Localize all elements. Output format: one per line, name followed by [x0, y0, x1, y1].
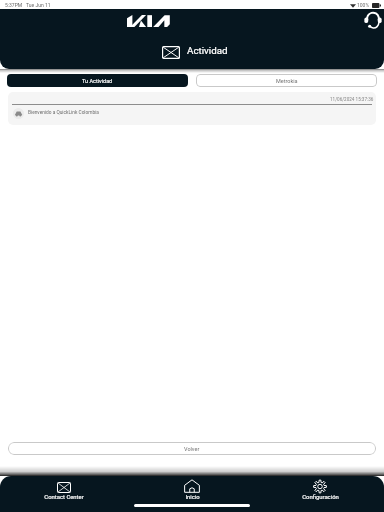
staticText: Inicio [185, 494, 200, 501]
button[interactable]: Contact Center [0, 479, 128, 501]
staticText: Actividad [187, 45, 228, 56]
staticText: 5:37PM [5, 2, 23, 8]
staticText: Contact Center [44, 494, 84, 501]
staticText: Tue Jun 11 [26, 2, 51, 8]
staticText: 11/06/2024 15:37:36 [330, 97, 374, 102]
button[interactable]: Volver [8, 442, 376, 455]
staticText: Tu Actividad [82, 78, 113, 84]
button[interactable]: Metrokia [196, 74, 377, 87]
button[interactable]: Inicio [128, 479, 256, 501]
staticText: 100% [357, 2, 370, 8]
button[interactable]: Contact support [363, 11, 383, 30]
staticText: Volver [184, 446, 200, 452]
staticText: Bienvenido a QuickLink Colombia [28, 110, 99, 116]
staticText: Configuración [302, 494, 339, 501]
button[interactable]: Tu Actividad [7, 74, 188, 87]
staticText: Metrokia [276, 78, 298, 84]
button[interactable]: 11/06/2024 15:37:36 [8, 92, 376, 125]
button[interactable]: Configuración [256, 479, 384, 501]
